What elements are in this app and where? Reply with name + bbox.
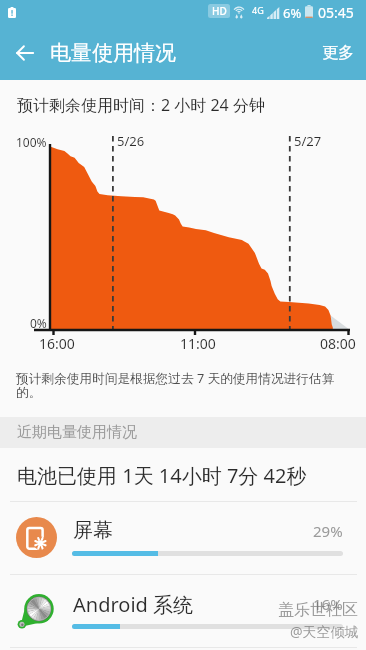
staticText: 5/27 [294,132,322,150]
button[interactable]: 屏幕 [0,501,366,574]
staticText: 更多 [322,43,354,63]
staticText: @天空倾城 [290,622,359,641]
staticText: 6% [283,4,302,22]
staticText: Android 系统 [73,591,194,618]
staticText: 11:00 [180,334,216,353]
staticText: 近期电量使用情况 [17,423,137,442]
staticText: 4G [252,4,264,16]
staticText: 电池已使用 1天 14小时 7分 42秒 [17,462,307,489]
staticText: 0% [30,315,47,331]
staticText: 16:00 [39,334,75,353]
staticText: 08:00 [320,334,356,353]
staticText: 预计剩余使用时间：2 小时 24 分钟 [17,94,265,116]
button[interactable]: 返回 [5,33,45,73]
staticText: 05:45 [318,3,354,22]
staticText: HD [212,4,227,18]
button[interactable]: 更多 [310,33,366,73]
staticText: 电量使用情况 [50,40,176,66]
staticText: 盖乐世社区 [278,600,358,620]
button[interactable]: Android 系统 [0,574,366,647]
staticText: 5/26 [117,132,145,150]
staticText: 16% [313,594,343,614]
staticText: 29% [313,521,343,541]
staticText: 100% [16,134,47,150]
staticText: 预计剩余使用时间是根据您过去 7 天的使用情况进行估算的。 [16,369,343,401]
staticText: 屏幕 [73,518,113,543]
